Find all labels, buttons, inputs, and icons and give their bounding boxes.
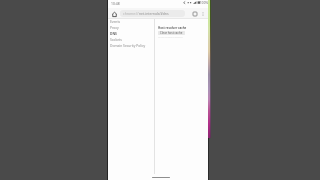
staticText: Clear host cache: [160, 31, 183, 35]
staticText: 100%: [200, 1, 209, 5]
staticText: chrome://: [123, 11, 139, 16]
staticText: Sockets: [110, 37, 122, 41]
staticText: Domain Security Policy: [110, 43, 146, 47]
button[interactable]: chrome://: [120, 10, 185, 17]
button[interactable]: More options: [199, 10, 206, 17]
staticText: Proxy: [110, 25, 119, 29]
button[interactable]: Switch tabs: [191, 10, 198, 17]
staticText: Show expired entries: [158, 35, 183, 38]
button[interactable]: Domain Security Policy: [110, 42, 152, 48]
button[interactable]: Home: [111, 11, 118, 18]
staticText: DNS: [110, 31, 117, 35]
button[interactable]: DNS: [110, 30, 152, 36]
button[interactable]: Proxy: [110, 24, 152, 30]
staticText: Events: [110, 19, 121, 23]
staticText: Host resolver cache: [158, 26, 187, 30]
button[interactable]: Clear host cache: [158, 31, 185, 35]
staticText: net-internals/#dns: [139, 11, 169, 16]
button[interactable]: Sockets: [110, 36, 152, 42]
button[interactable]: Events: [110, 18, 152, 24]
staticText: 10:48: [111, 1, 120, 6]
